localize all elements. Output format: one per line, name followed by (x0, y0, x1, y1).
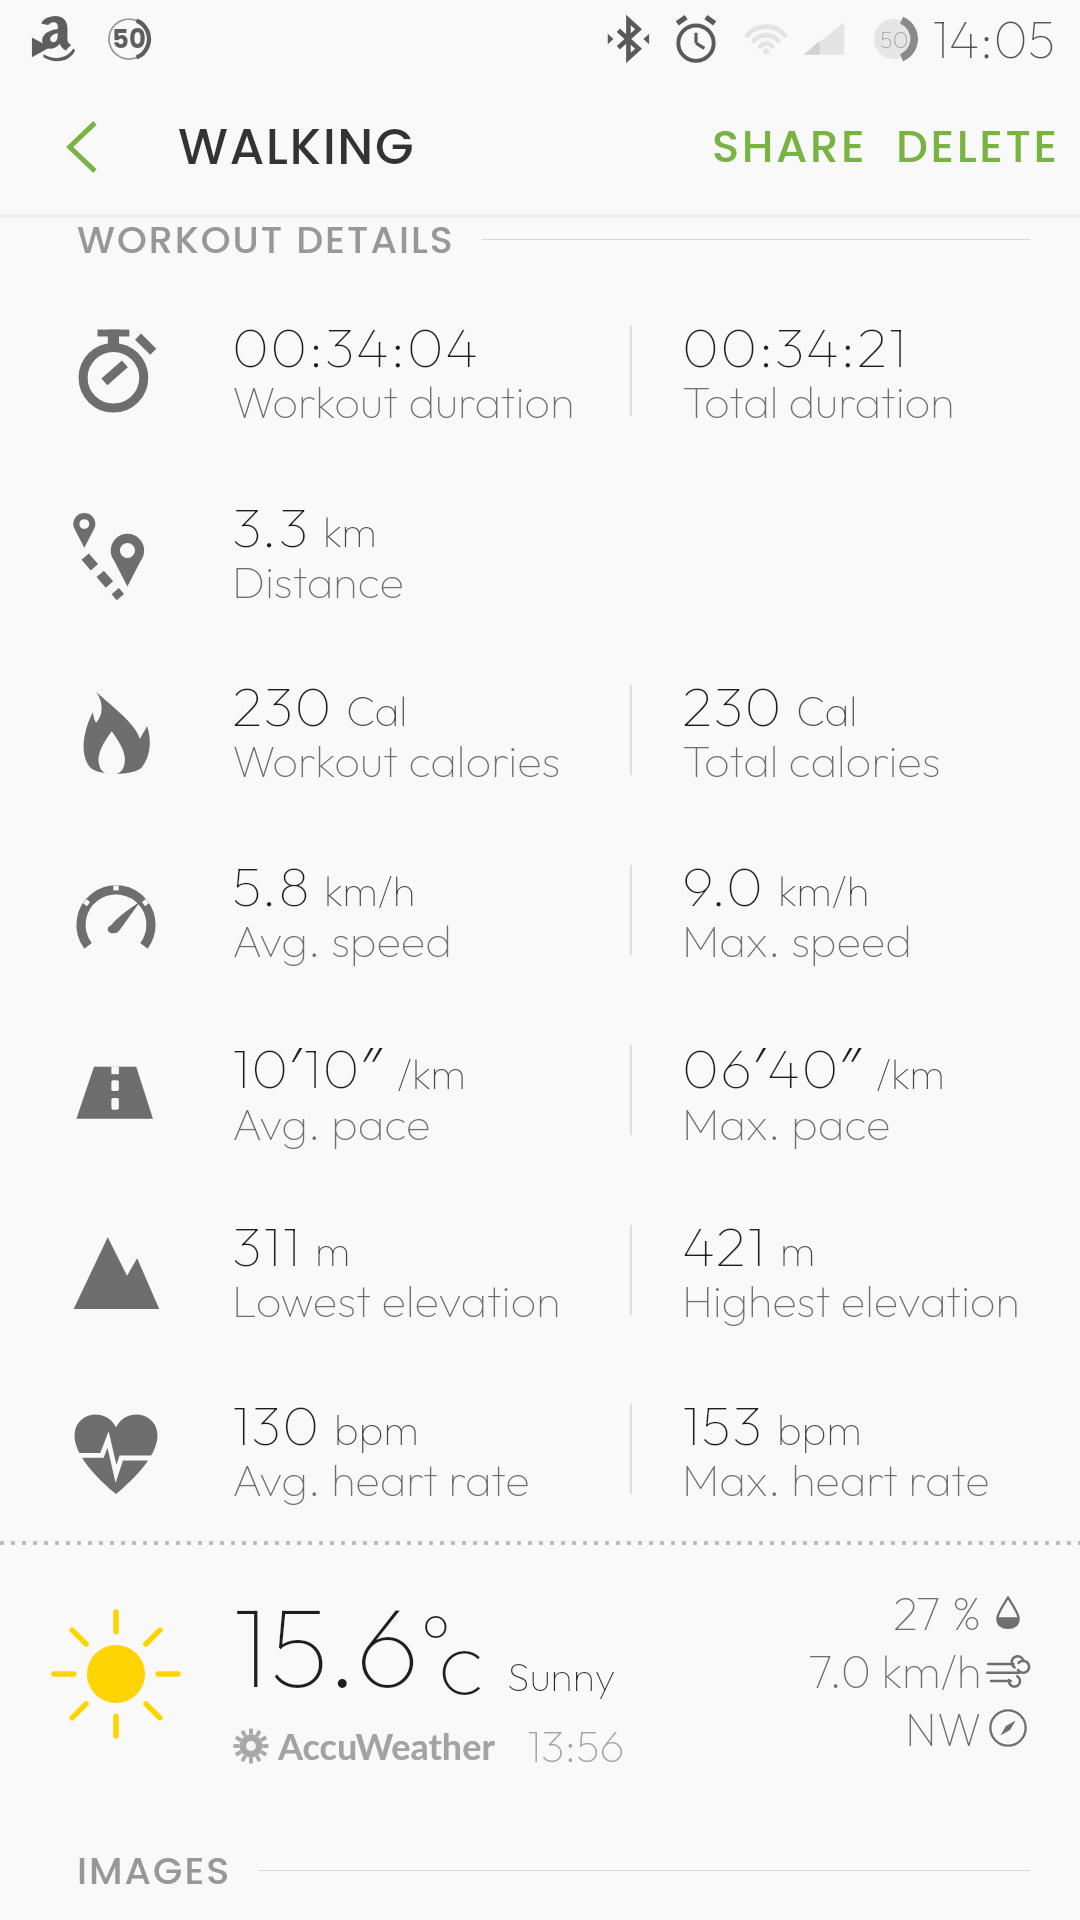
button[interactable]: 10′10″ (0, 1004, 1080, 1184)
button[interactable]: DELETE (882, 97, 1074, 196)
staticText: m (315, 1224, 351, 1277)
button[interactable]: 5.8 (0, 824, 1080, 1004)
button[interactable]: 3.3 (0, 465, 1080, 645)
staticText: Cal (346, 684, 408, 737)
staticText: Max. heart rate (682, 1451, 990, 1508)
staticText: Total duration (682, 373, 955, 430)
staticText: WALKING (178, 112, 416, 182)
staticText: Max. pace (682, 1095, 891, 1152)
staticText: Avg. heart rate (232, 1451, 530, 1508)
staticText: 230 (232, 670, 333, 741)
staticText: IMAGES (77, 1844, 232, 1897)
staticText: 00:34:21 (682, 311, 908, 382)
staticText: km/h (324, 864, 416, 917)
button[interactable]: Back (38, 103, 126, 191)
staticText: 311 (232, 1210, 302, 1281)
staticText: Avg. speed (232, 912, 452, 969)
staticText: 14:05 (932, 6, 1056, 72)
staticText: km (323, 505, 377, 558)
staticText: DELETE (896, 115, 1060, 178)
staticText: 27 % (893, 1584, 982, 1640)
staticText: c (438, 1602, 484, 1718)
staticText: 15.6 (232, 1574, 421, 1716)
button[interactable]: 00:34:04 (0, 285, 1080, 465)
staticText: SHARE (712, 115, 868, 178)
staticText: Workout duration (232, 373, 575, 430)
staticText: 130 (232, 1389, 321, 1460)
staticText: 9.0 (682, 850, 765, 921)
staticText: 00:34:04 (232, 311, 480, 382)
staticText: 7.0 km/h (808, 1642, 982, 1698)
staticText: 230 (682, 670, 783, 741)
staticText: Max. speed (682, 912, 912, 969)
staticText: Workout calories (232, 732, 561, 789)
staticText: NW (905, 1700, 982, 1756)
staticText: 3.3 (232, 491, 310, 562)
staticText: km/h (778, 864, 870, 917)
staticText: WORKOUT DETAILS (77, 213, 455, 266)
staticText: Total calories (682, 732, 941, 789)
button[interactable]: SHARE (698, 97, 882, 196)
staticText: 06′40″ (682, 1028, 863, 1104)
staticText: m (780, 1224, 816, 1277)
staticText: 421 (682, 1210, 767, 1281)
staticText: 153 (682, 1389, 764, 1460)
staticText: Highest elevation (682, 1272, 1020, 1329)
staticText: 10′10″ (232, 1028, 384, 1104)
staticText: 5.8 (232, 850, 311, 921)
staticText: /km (397, 1047, 466, 1100)
button[interactable]: 15.6 (0, 1573, 1080, 1773)
staticText: ° (421, 1593, 451, 1686)
staticText: Lowest elevation (232, 1272, 561, 1329)
staticText: bpm (334, 1403, 419, 1456)
staticText: AccuWeather (278, 1724, 495, 1767)
staticText: 50 (880, 24, 909, 54)
staticText: /km (876, 1047, 945, 1100)
staticText: bpm (777, 1403, 862, 1456)
staticText: Cal (796, 684, 858, 737)
staticText: Distance (232, 553, 404, 610)
staticText: Sunny (507, 1650, 616, 1702)
staticText: Avg. pace (232, 1095, 431, 1152)
button[interactable]: 230 (0, 644, 1080, 824)
button[interactable]: 311 (0, 1184, 1080, 1364)
button[interactable]: 130 (0, 1363, 1080, 1543)
staticText: 13:56 (527, 1718, 625, 1773)
staticText: 50 (112, 21, 146, 57)
